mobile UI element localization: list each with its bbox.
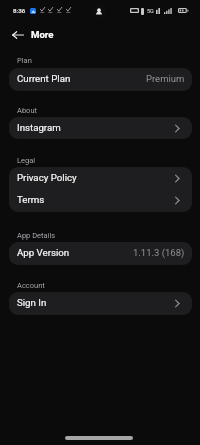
staticText: More [31, 29, 54, 40]
staticText: 8:36 [13, 7, 26, 14]
staticText: Privacy Policy [17, 172, 77, 183]
button[interactable]: Current Plan [9, 68, 192, 91]
button[interactable]: Sign In [9, 292, 192, 315]
staticText: Sign In [17, 297, 47, 308]
staticText: Legal [17, 156, 36, 165]
staticText: App Version [17, 247, 70, 258]
staticText: App Details [17, 231, 56, 240]
staticText: Current Plan [17, 73, 71, 84]
staticText: Instagram [17, 122, 61, 133]
staticText: 5G [147, 8, 154, 14]
button[interactable]: App Version [9, 242, 192, 265]
staticText: Premium [146, 73, 185, 84]
staticText: 1.11.3 (168) [133, 247, 185, 258]
button[interactable]: Terms [9, 189, 192, 211]
staticText: Plan [17, 56, 32, 65]
staticText: Terms [17, 194, 45, 205]
button[interactable]: Back [9, 24, 27, 45]
button[interactable]: Privacy Policy [9, 167, 192, 189]
staticText: About [17, 106, 37, 115]
staticText: Account [17, 281, 45, 290]
button[interactable]: Instagram [9, 117, 192, 139]
